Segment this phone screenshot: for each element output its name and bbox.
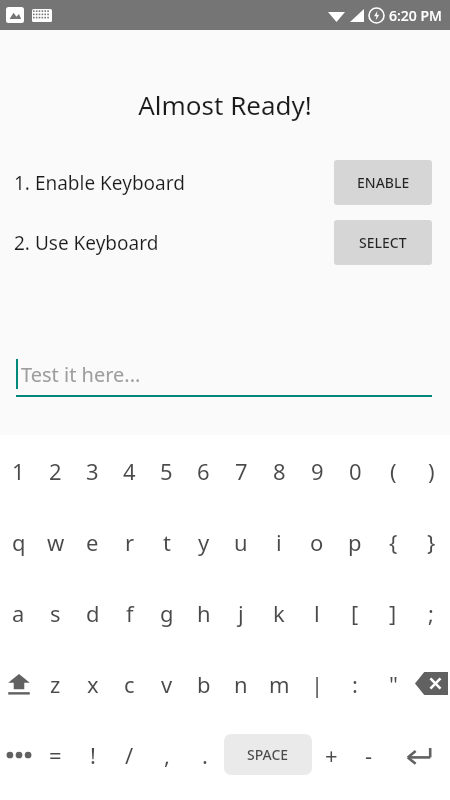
staticText: { xyxy=(389,527,398,557)
staticText: 5 xyxy=(160,456,173,486)
staticText: r xyxy=(125,527,135,557)
staticText: z xyxy=(50,669,61,699)
staticText: m xyxy=(269,669,290,699)
button[interactable]: i xyxy=(260,506,298,577)
button[interactable]: 3 xyxy=(74,435,111,506)
staticText: e xyxy=(86,527,99,557)
button[interactable]: k xyxy=(260,577,298,648)
button[interactable]: e xyxy=(74,506,111,577)
button[interactable]: o xyxy=(298,506,336,577)
button[interactable]: n xyxy=(222,648,260,719)
button[interactable]: x xyxy=(74,648,111,719)
button[interactable]: 7 xyxy=(222,435,260,506)
button[interactable]: { xyxy=(374,506,412,577)
button[interactable]: j xyxy=(222,577,260,648)
button[interactable]: b xyxy=(185,648,222,719)
staticText: g xyxy=(160,598,174,628)
button[interactable]: u xyxy=(222,506,260,577)
button[interactable]: h xyxy=(185,577,222,648)
staticText: v xyxy=(161,669,173,699)
staticText: 1 xyxy=(12,456,25,486)
button[interactable]: 5 xyxy=(148,435,185,506)
button[interactable]: + xyxy=(312,719,350,790)
button[interactable]: a xyxy=(0,577,37,648)
button[interactable]: m xyxy=(260,648,298,719)
button[interactable]: w xyxy=(37,506,74,577)
staticText: SELECT xyxy=(359,233,407,252)
staticText: ; xyxy=(428,598,434,628)
staticText: i xyxy=(276,527,282,557)
button[interactable]: Shift xyxy=(0,648,37,719)
button[interactable]: g xyxy=(148,577,185,648)
button[interactable]: 1 xyxy=(0,435,37,506)
button[interactable]: ! xyxy=(74,719,111,790)
button[interactable]: More symbols xyxy=(0,719,37,790)
button[interactable]: r xyxy=(111,506,148,577)
button[interactable]: = xyxy=(37,719,74,790)
staticText: x xyxy=(87,669,99,699)
staticText: s xyxy=(50,598,61,628)
staticText: / xyxy=(125,740,134,770)
staticText: k xyxy=(273,598,285,628)
staticText: 1. Enable Keyboard xyxy=(14,170,185,196)
staticText: 4 xyxy=(123,456,136,486)
button[interactable]: d xyxy=(74,577,111,648)
staticText: h xyxy=(197,598,211,628)
staticText: 2. Use Keyboard xyxy=(14,230,159,256)
button[interactable]: 8 xyxy=(260,435,298,506)
button[interactable]: 9 xyxy=(298,435,336,506)
staticText: } xyxy=(427,527,436,557)
staticText: w xyxy=(47,527,65,557)
button[interactable]: - xyxy=(350,719,388,790)
button[interactable]: Backspace xyxy=(412,648,450,719)
staticText: SPACE xyxy=(247,745,289,764)
staticText: b xyxy=(197,669,211,699)
staticText: Almost Ready! xyxy=(0,87,450,122)
button[interactable]: ( xyxy=(374,435,412,506)
button[interactable]: [ xyxy=(336,577,374,648)
staticText: . xyxy=(202,740,208,770)
button[interactable]: Enter xyxy=(388,719,450,790)
button[interactable]: t xyxy=(148,506,185,577)
button[interactable]: , xyxy=(148,719,186,790)
button[interactable]: ENABLE xyxy=(334,160,432,205)
button[interactable]: / xyxy=(111,719,148,790)
staticText: f xyxy=(126,598,134,628)
button[interactable]: | xyxy=(298,648,336,719)
staticText: ! xyxy=(90,740,96,770)
button[interactable]: SPACE xyxy=(224,734,312,775)
staticText: c xyxy=(124,669,135,699)
staticText: , xyxy=(164,740,170,770)
button[interactable]: v xyxy=(148,648,185,719)
button[interactable]: p xyxy=(336,506,374,577)
button[interactable]: SELECT xyxy=(334,220,432,265)
button[interactable]: : xyxy=(336,648,374,719)
button[interactable]: 4 xyxy=(111,435,148,506)
button[interactable]: c xyxy=(111,648,148,719)
button[interactable]: ; xyxy=(412,577,450,648)
button[interactable]: s xyxy=(37,577,74,648)
button[interactable]: y xyxy=(185,506,222,577)
staticText: 7 xyxy=(235,456,248,486)
button[interactable]: l xyxy=(298,577,336,648)
staticText: y xyxy=(198,527,210,557)
staticText: j xyxy=(238,598,244,628)
staticText: " xyxy=(389,669,398,699)
staticText: o xyxy=(310,527,324,557)
button[interactable]: } xyxy=(412,506,450,577)
button[interactable]: f xyxy=(111,577,148,648)
staticText: 6:20 PM xyxy=(389,6,442,25)
button[interactable]: ) xyxy=(412,435,450,506)
button[interactable]: 2 xyxy=(37,435,74,506)
button[interactable]: q xyxy=(0,506,37,577)
staticText: [ xyxy=(351,598,359,628)
staticText: 9 xyxy=(311,456,324,486)
button[interactable]: z xyxy=(37,648,74,719)
button[interactable]: . xyxy=(186,719,224,790)
button[interactable]: 6 xyxy=(185,435,222,506)
button[interactable]: " xyxy=(374,648,412,719)
staticText: p xyxy=(348,527,362,557)
button[interactable]: ] xyxy=(374,577,412,648)
button[interactable]: 0 xyxy=(336,435,374,506)
staticText: 6 xyxy=(197,456,210,486)
